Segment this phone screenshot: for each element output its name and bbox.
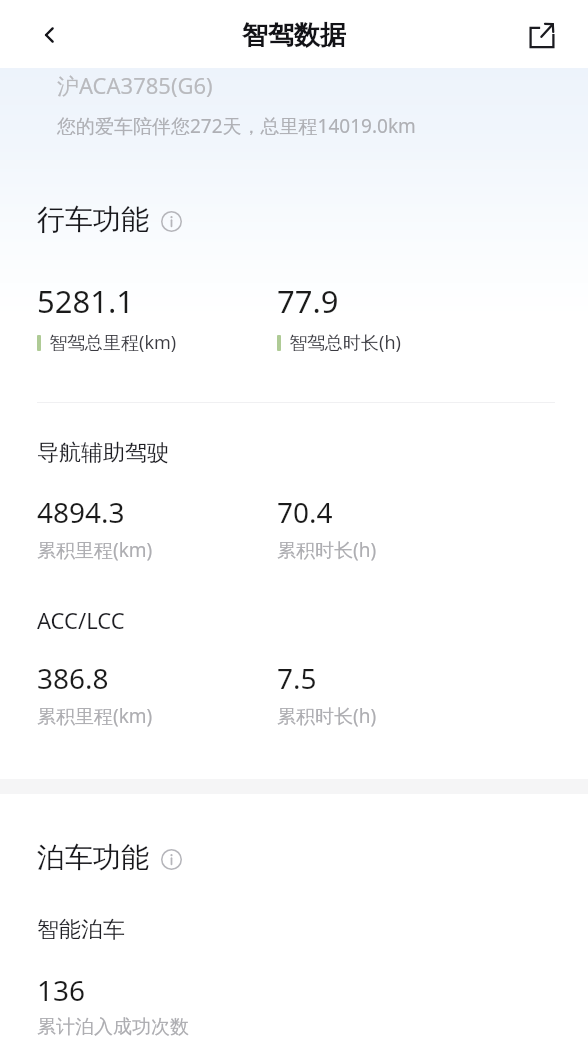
staticText: 智驾总时长(h) [289, 330, 401, 355]
staticText: 累积里程(km) [37, 537, 153, 563]
staticText: 累计泊入成功次数 [37, 1015, 189, 1039]
staticText: 7.5 [277, 659, 317, 697]
staticText: 77.9 [277, 280, 339, 322]
staticText: 386.8 [37, 659, 109, 697]
staticText: 行车功能 [37, 202, 149, 237]
staticText: 泊车功能 [37, 840, 149, 875]
staticText: 4894.3 [37, 493, 125, 531]
staticText: 5281.1 [37, 280, 134, 322]
staticText: 累积时长(h) [277, 703, 377, 729]
staticText: 70.4 [277, 493, 333, 531]
staticText: 导航辅助驾驶 [37, 439, 169, 467]
staticText: 沪ACA3785(G6) [57, 70, 213, 100]
button[interactable]: 泊车功能 [37, 840, 182, 875]
staticText: 智驾数据 [242, 19, 346, 52]
button[interactable]: Share [518, 11, 566, 59]
staticText: 累积里程(km) [37, 703, 153, 729]
staticText: ACC/LCC [37, 605, 125, 635]
staticText: 136 [37, 971, 86, 1009]
staticText: 智能泊车 [37, 916, 125, 944]
button[interactable]: Back [26, 11, 74, 59]
button[interactable]: 行车功能 [37, 202, 182, 237]
staticText: 智驾总里程(km) [49, 330, 177, 355]
staticText: 您的爱车陪伴您272天，总里程14019.0km [57, 113, 416, 139]
staticText: 累积时长(h) [277, 537, 377, 563]
